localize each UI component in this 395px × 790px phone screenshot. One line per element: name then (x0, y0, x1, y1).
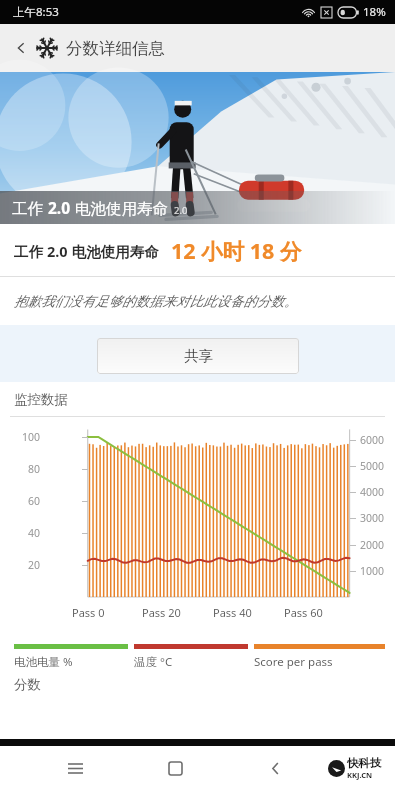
staticText: 2.0 (47, 241, 68, 261)
button[interactable]: 共享 (97, 338, 299, 374)
staticText: 100 (22, 430, 41, 444)
staticText: 分数 (14, 676, 41, 693)
button[interactable]: Back (252, 748, 298, 788)
button[interactable]: Recent apps (52, 748, 98, 788)
staticText: 1000 (360, 564, 385, 578)
button[interactable]: Home (152, 748, 198, 788)
staticText: Pass 20 (142, 605, 181, 620)
staticText: 快科技 (347, 756, 382, 770)
staticText: 5000 (360, 459, 385, 473)
staticText: 上午8:53 (13, 4, 59, 20)
staticText: 监控数据 (14, 391, 68, 408)
staticText: 2.0 (174, 204, 188, 217)
staticText: 共享 (184, 347, 213, 365)
staticText: 40 (28, 526, 41, 540)
staticText: 工作 (12, 197, 48, 218)
staticText: 2.0 (48, 197, 71, 218)
staticText: 12 小时 18 分 (171, 236, 302, 265)
staticText: Pass 60 (284, 605, 323, 620)
staticText: 60 (28, 494, 41, 508)
staticText: 2000 (360, 538, 385, 552)
staticText: 抱歉我们没有足够的数据来对比此设备的分数。 (14, 293, 298, 310)
staticText: 3000 (360, 511, 385, 525)
staticText: Pass 0 (72, 605, 105, 620)
staticText: KKJ.CN (347, 770, 373, 780)
staticText: 20 (28, 558, 41, 572)
staticText: 电池电量 % (14, 654, 73, 670)
staticText: 工作 (14, 241, 47, 261)
staticText: 电池使用寿命 (68, 241, 159, 261)
staticText: 电池使用寿命 (71, 197, 169, 218)
staticText: 4000 (360, 485, 385, 499)
button[interactable]: Back (6, 33, 36, 63)
staticText: 18% (363, 4, 386, 20)
staticText: 80 (28, 462, 41, 476)
staticText: 6000 (360, 433, 385, 447)
staticText: 分数详细信息 (66, 38, 165, 59)
staticText: Score per pass (254, 654, 333, 670)
staticText: Pass 40 (213, 605, 252, 620)
staticText: 温度 °C (134, 654, 173, 670)
